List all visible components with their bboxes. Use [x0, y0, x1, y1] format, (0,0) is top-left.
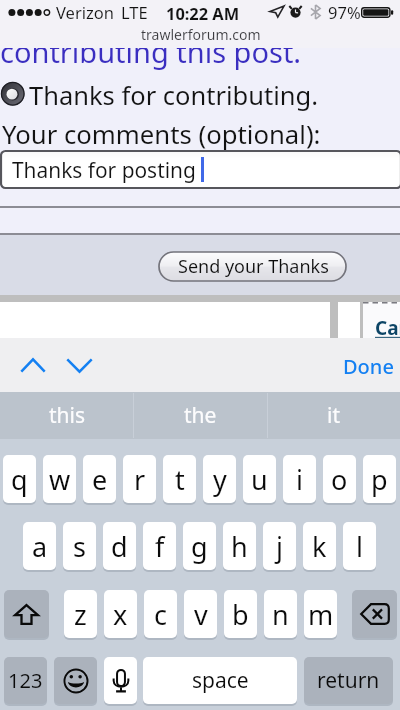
staticText: q	[11, 461, 28, 498]
staticText: z	[74, 596, 87, 633]
button[interactable]: k	[303, 522, 336, 570]
button[interactable]: o	[323, 455, 356, 503]
staticText: d	[111, 528, 128, 565]
staticText: l	[356, 528, 363, 565]
button[interactable]: y	[203, 455, 236, 503]
staticText: LTE	[121, 1, 148, 23]
button[interactable]: n	[264, 590, 297, 638]
staticText: g	[191, 528, 208, 565]
staticText: the	[184, 401, 217, 430]
staticText: a	[32, 528, 48, 565]
staticText: f	[155, 528, 165, 565]
staticText: 10:22 AM	[166, 2, 240, 24]
staticText: Car	[375, 315, 400, 339]
staticText: it	[327, 401, 340, 430]
staticText: v	[194, 596, 208, 633]
button[interactable]: 123	[4, 657, 47, 704]
staticText: 97%	[328, 1, 361, 23]
staticText: p	[371, 461, 388, 498]
button[interactable]: it	[267, 392, 400, 439]
button[interactable]	[1, 151, 400, 188]
button[interactable]: space	[143, 657, 297, 704]
staticText: x	[113, 596, 128, 633]
button[interactable]: s	[63, 522, 96, 570]
button[interactable]: e	[83, 455, 116, 503]
button[interactable]: d	[103, 522, 136, 570]
button[interactable]: the	[134, 392, 267, 439]
staticText: c	[154, 596, 167, 633]
staticText: b	[232, 596, 249, 633]
staticText: 123	[8, 667, 43, 694]
button[interactable]: v	[184, 590, 217, 638]
staticText: m	[308, 596, 334, 633]
staticText: k	[312, 528, 327, 565]
button[interactable]: m	[304, 590, 337, 638]
staticText: i	[296, 461, 303, 498]
staticText: o	[331, 461, 348, 498]
button[interactable]: j	[263, 522, 296, 570]
staticText: contributing this post.	[0, 48, 302, 71]
staticText: Thanks for contributing.	[29, 78, 319, 113]
staticText: y	[213, 461, 227, 498]
button[interactable]: c	[144, 590, 177, 638]
staticText: space	[192, 666, 249, 695]
button[interactable]: r	[123, 455, 156, 503]
staticText: return	[317, 666, 380, 695]
button[interactable]: this	[0, 392, 134, 439]
button[interactable]: Shift	[4, 590, 49, 638]
button[interactable]: i	[283, 455, 316, 503]
button[interactable]	[159, 252, 346, 281]
button[interactable]: Emoji keyboard	[54, 657, 97, 704]
staticText: e	[92, 461, 108, 498]
staticText: Send your Thanks	[178, 254, 329, 279]
button[interactable]: a	[23, 522, 56, 570]
button[interactable]: Backspace	[352, 590, 397, 638]
staticText: w	[49, 461, 71, 498]
button[interactable]: q	[3, 455, 36, 503]
staticText: n	[272, 596, 289, 633]
button[interactable]: Next field	[60, 350, 98, 382]
staticText: Verizon	[56, 1, 114, 23]
button[interactable]: b	[224, 590, 257, 638]
staticText: j	[276, 528, 283, 565]
button[interactable]: x	[104, 590, 137, 638]
staticText: h	[231, 528, 248, 565]
staticText: r	[134, 461, 146, 498]
button[interactable]: z	[64, 590, 97, 638]
staticText: trawlerforum.com	[141, 25, 261, 44]
staticText: s	[73, 528, 86, 565]
button[interactable]: l	[343, 522, 376, 570]
button[interactable]: return	[304, 657, 393, 704]
button[interactable]	[336, 346, 396, 386]
button[interactable]: u	[243, 455, 276, 503]
button[interactable]: t	[163, 455, 196, 503]
button[interactable]: w	[43, 455, 76, 503]
button[interactable]: p	[363, 455, 396, 503]
button[interactable]: h	[223, 522, 256, 570]
staticText: this	[49, 401, 86, 430]
button[interactable]: Previous field	[14, 350, 52, 382]
staticText: Done	[343, 353, 394, 380]
button[interactable]: g	[183, 522, 216, 570]
staticText: u	[251, 461, 268, 498]
staticText: Your comments (optional):	[2, 117, 321, 152]
button[interactable]: f	[143, 522, 176, 570]
button[interactable]: Dictation	[104, 657, 137, 704]
staticText: Thanks for posting	[12, 156, 196, 184]
staticText: t	[175, 461, 185, 498]
